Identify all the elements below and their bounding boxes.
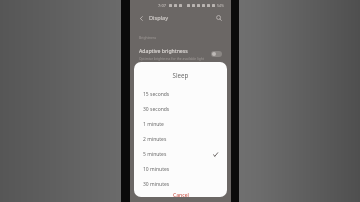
button[interactable]: 10 minutes	[134, 162, 227, 177]
staticText: Sleep	[134, 71, 227, 79]
button[interactable]: 5 minutes	[134, 147, 227, 162]
button[interactable]: Search	[214, 13, 224, 23]
staticText: Display	[149, 14, 169, 22]
staticText: Adaptive brightness	[139, 47, 188, 54]
button[interactable]: 2 minutes	[134, 132, 227, 147]
button[interactable]: 30 minutes	[134, 177, 227, 192]
staticText: Brightness	[139, 35, 157, 40]
button[interactable]: Adaptive brightness	[130, 46, 231, 61]
staticText: 2 minutes	[143, 136, 167, 143]
staticText: 1 minute	[143, 121, 164, 128]
button[interactable]: 30 seconds	[134, 102, 227, 117]
staticText: 7:07	[158, 3, 166, 8]
staticText: Cancel	[173, 192, 189, 197]
staticText: 30 seconds	[143, 106, 170, 113]
staticText: Optimise brightness for the available li…	[139, 56, 205, 60]
staticText: 15 seconds	[143, 91, 170, 98]
button[interactable]: Adaptive brightness toggle	[211, 51, 222, 57]
staticText: 54%	[217, 3, 225, 8]
button[interactable]: 1 minute	[134, 117, 227, 132]
staticText: 5 minutes	[143, 151, 167, 158]
staticText: 30 minutes	[143, 181, 170, 188]
button[interactable]: Back	[137, 14, 146, 23]
button[interactable]: Cancel	[134, 192, 227, 197]
staticText: 10 minutes	[143, 166, 170, 173]
button[interactable]: 15 seconds	[134, 87, 227, 102]
